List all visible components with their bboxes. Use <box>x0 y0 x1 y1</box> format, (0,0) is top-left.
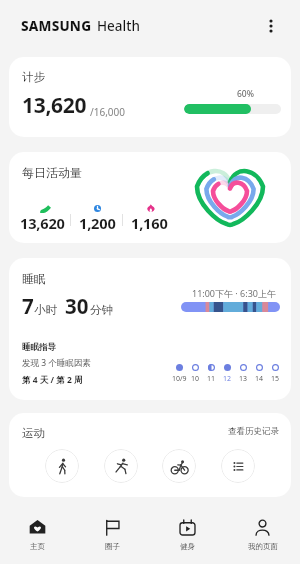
button[interactable]: 主页 <box>0 519 75 551</box>
button[interactable]: 我的页面 <box>225 519 300 551</box>
staticText: 计步 <box>22 70 45 84</box>
button[interactable]: 健身 <box>150 519 225 551</box>
staticText: 10/9 <box>172 374 187 384</box>
staticText: 发现 3 个睡眠因素 <box>22 357 91 369</box>
staticText: 13 <box>239 374 248 384</box>
button[interactable]: 运动 <box>9 413 291 497</box>
staticText: 30 <box>65 292 89 320</box>
button[interactable]: Cycling <box>162 449 196 483</box>
staticText: 1,160 <box>131 213 168 233</box>
staticText: 1,200 <box>79 213 116 233</box>
staticText: 圈子 <box>105 542 120 551</box>
button[interactable]: 睡眠 <box>9 258 291 400</box>
staticText: 我的页面 <box>248 542 278 551</box>
staticText: 运动 <box>22 426 45 440</box>
staticText: 健身 <box>180 542 195 551</box>
staticText: 睡眠指导 <box>22 342 56 353</box>
button[interactable]: More options <box>258 13 284 39</box>
staticText: 睡眠 <box>22 271 46 286</box>
button[interactable]: 查看历史记录 <box>219 422 288 441</box>
button[interactable]: 计步 <box>9 57 291 137</box>
button[interactable]: Walking <box>45 449 79 483</box>
staticText: 分钟 <box>90 303 113 317</box>
staticText: 11:00下午 · 6:30上午 <box>192 287 276 299</box>
staticText: 10 <box>191 374 200 384</box>
staticText: 查看历史记录 <box>228 426 279 437</box>
button[interactable]: Exercise list <box>221 449 255 483</box>
staticText: 7 <box>22 292 34 320</box>
staticText: 11 <box>207 374 216 384</box>
button[interactable]: 每日活动量 <box>9 152 291 243</box>
staticText: 13,620 <box>22 91 87 120</box>
staticText: 12 <box>223 374 232 384</box>
staticText: 14 <box>255 374 264 384</box>
staticText: SAMSUNG <box>21 17 92 35</box>
staticText: 主页 <box>30 542 45 551</box>
staticText: Health <box>97 17 140 35</box>
staticText: 13,620 <box>20 213 65 233</box>
staticText: 每日活动量 <box>22 165 82 180</box>
button[interactable]: Running <box>104 449 138 483</box>
staticText: 第 4 天 / 第 2 周 <box>22 374 83 386</box>
button[interactable]: 圈子 <box>75 519 150 551</box>
staticText: 15 <box>271 374 280 384</box>
staticText: 小时 <box>34 303 57 317</box>
staticText: 60% <box>237 88 254 100</box>
staticText: /16,000 <box>90 105 125 119</box>
